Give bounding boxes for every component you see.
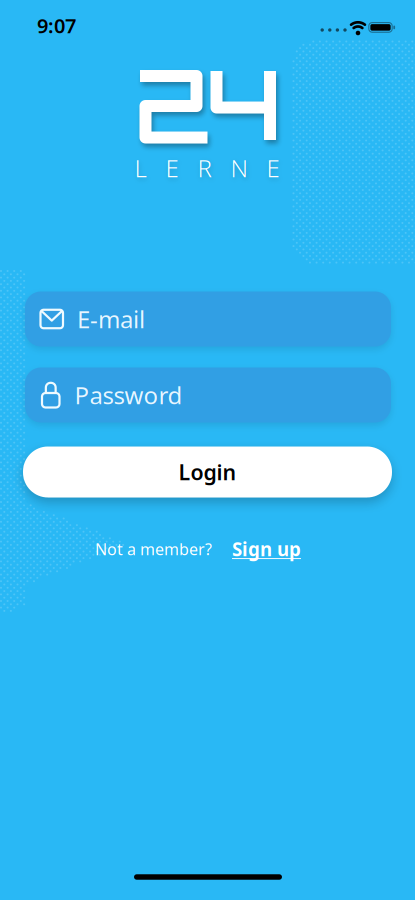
button[interactable]: E-mail (25, 291, 391, 346)
button[interactable]: Login (23, 446, 392, 497)
button[interactable]: Sign up (232, 537, 301, 561)
staticText: LERNE (134, 152, 279, 184)
staticText: Sign up (232, 537, 301, 561)
button[interactable]: Password (25, 367, 391, 422)
staticText: 9:07 (37, 12, 76, 39)
staticText: Login (178, 458, 236, 486)
staticText: Not a member? (95, 538, 212, 560)
staticText: E-mail (77, 303, 145, 335)
staticText: Password (74, 379, 182, 411)
